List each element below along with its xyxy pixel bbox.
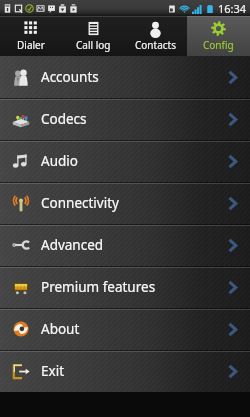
staticText: 16:34 (218, 1, 247, 16)
button[interactable]: Codecs (0, 98, 250, 140)
button[interactable]: Accounts (0, 56, 250, 98)
button[interactable]: Advanced (0, 224, 250, 266)
staticText: Contacts (135, 38, 176, 52)
button[interactable]: Audio (0, 140, 250, 182)
button[interactable]: Premium features (0, 266, 250, 308)
button[interactable]: Exit (0, 350, 250, 392)
staticText: Audio (41, 152, 78, 170)
staticText: Dialer (17, 38, 45, 52)
button[interactable]: Contacts (124, 16, 187, 56)
staticText: Config (203, 38, 234, 52)
staticText: Advanced (41, 236, 104, 254)
button[interactable]: Connectivity (0, 182, 250, 224)
button[interactable]: Dialer (0, 16, 62, 56)
staticText: Connectivity (41, 194, 119, 212)
staticText: Exit (41, 362, 65, 380)
button[interactable]: Call log (62, 16, 124, 56)
staticText: Accounts (41, 68, 99, 86)
button[interactable]: About (0, 308, 250, 350)
staticText: About (41, 320, 80, 338)
button[interactable]: Config (187, 16, 250, 56)
staticText: Codecs (41, 110, 87, 128)
staticText: Call log (76, 38, 111, 52)
staticText: Premium features (41, 278, 156, 296)
